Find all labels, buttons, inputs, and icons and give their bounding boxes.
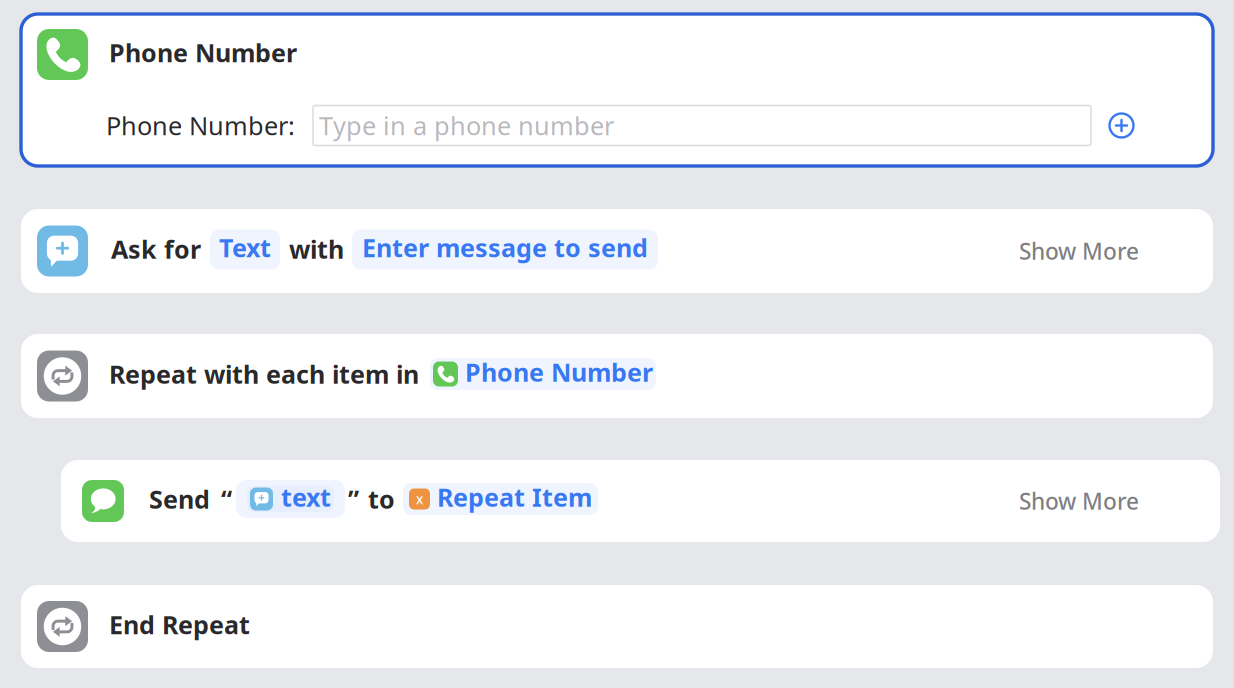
staticText: End Repeat [109, 607, 250, 641]
staticText: with [289, 232, 344, 266]
staticText: to [368, 482, 395, 516]
staticText: Enter message to send [362, 230, 648, 264]
staticText: Type in a phone number [319, 108, 614, 143]
staticText: Ask for [111, 232, 201, 266]
staticText: Send [149, 482, 210, 516]
button[interactable]: Repeat with each item in [0, 334, 1234, 418]
staticText: ” [348, 482, 359, 516]
staticText: Text [219, 230, 271, 264]
staticText: Repeat with each item in [109, 357, 419, 391]
staticText: Show More [1019, 486, 1139, 516]
staticText: Phone Number: [106, 108, 295, 143]
button[interactable]: Send [0, 460, 1234, 542]
button[interactable]: End Repeat [0, 585, 1234, 668]
staticText: x [416, 490, 423, 508]
staticText: Repeat Item [437, 480, 592, 514]
staticText: “ [221, 482, 232, 516]
button[interactable]: Ask for [0, 209, 1234, 293]
staticText: text [281, 480, 331, 514]
staticText: Phone Number [109, 35, 297, 69]
button[interactable]: Phone Number [0, 14, 1234, 166]
staticText: Show More [1019, 236, 1139, 266]
staticText: Phone Number [465, 355, 653, 389]
